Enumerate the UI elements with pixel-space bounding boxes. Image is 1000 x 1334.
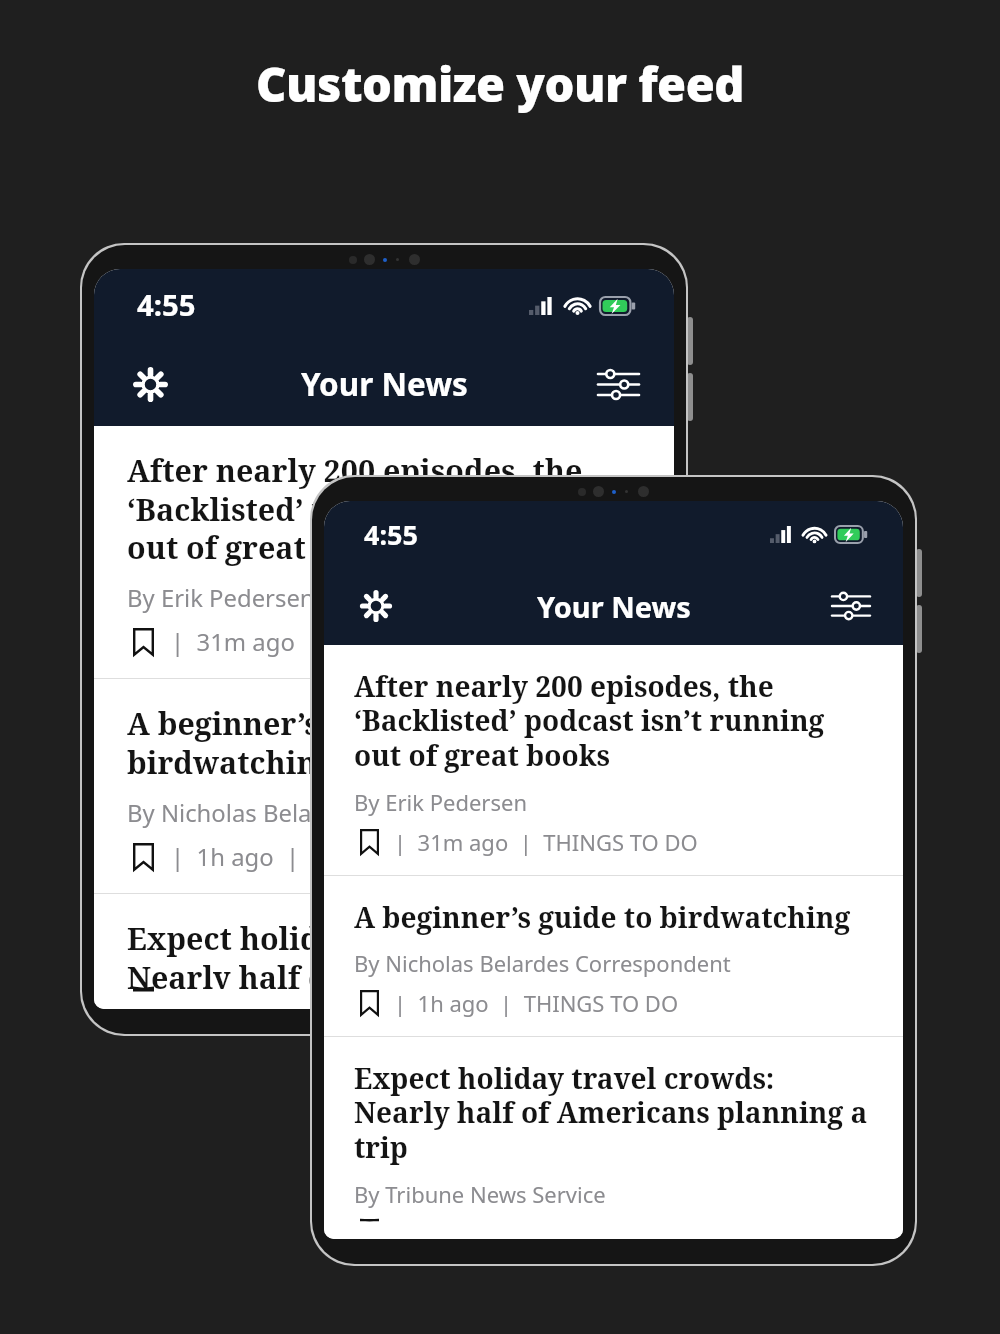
staticText: After nearly 200 episodes, the ‘Backlist… [127, 450, 646, 568]
staticText: After nearly 200 episodes, the ‘Backlist… [354, 667, 877, 775]
staticText: Your News [301, 362, 468, 405]
button[interactable]: Bookmark [354, 988, 384, 1018]
staticText: | 31m ago | THINGS TO DO [394, 827, 698, 857]
button[interactable]: Bookmark [127, 625, 160, 658]
staticText: Your News [537, 587, 691, 626]
staticText: By Nicholas Belardes Correspondent [127, 796, 536, 829]
button[interactable]: Filter feed [825, 580, 877, 632]
staticText: Expect holiday travel crowds: Nearly hal… [127, 918, 646, 989]
button[interactable]: After nearly 200 episodes, the ‘Backlist… [324, 645, 903, 875]
staticText: Expect holiday travel crowds: Nearly hal… [354, 1059, 877, 1167]
staticText: By Nicholas Belardes Correspondent [354, 948, 731, 978]
button[interactable]: Bookmark [354, 1219, 384, 1221]
button[interactable]: Bookmark [354, 827, 384, 857]
button[interactable]: Expect holiday travel crowds: Nearly hal… [94, 894, 674, 1009]
button[interactable]: Filter feed [590, 356, 646, 412]
staticText: By Tribune News Service [354, 1179, 606, 1209]
button[interactable]: After nearly 200 episodes, the ‘Backlist… [94, 426, 674, 678]
staticText: A beginner’s guide to birdwatching [354, 898, 851, 936]
button[interactable]: Settings [122, 356, 178, 412]
staticText: By Erik Pedersen [354, 787, 527, 817]
button[interactable]: A beginner’s guide to birdwatching [324, 876, 903, 1036]
button[interactable]: Expect holiday travel crowds: Nearly hal… [324, 1037, 903, 1239]
button[interactable]: Settings [350, 580, 402, 632]
staticText: 4:55 [364, 516, 418, 553]
button[interactable]: A beginner’s guide to birdwatching [94, 679, 674, 893]
staticText: | 31m ago | THINGS TO DO [171, 625, 501, 658]
staticText: | 1h ago | THINGS TO DO [394, 988, 679, 1018]
staticText: A beginner’s guide to birdwatching [127, 703, 646, 783]
staticText: 4:55 [137, 285, 196, 325]
button[interactable]: Bookmark [127, 840, 160, 873]
staticText: | 1h ago | THINGS TO DO [171, 840, 480, 873]
staticText: By Erik Pedersen [127, 581, 315, 614]
staticText: Customize your feed [0, 52, 1000, 116]
